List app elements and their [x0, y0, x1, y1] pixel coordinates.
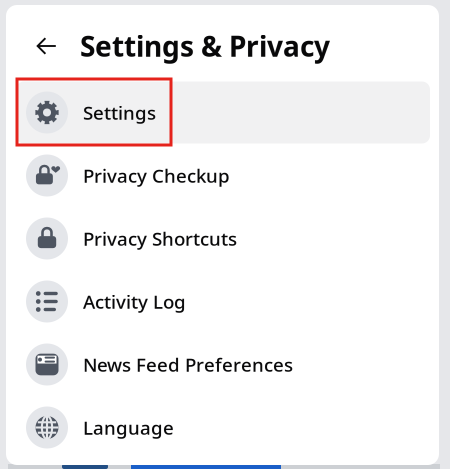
- staticText: Language: [83, 415, 174, 440]
- button[interactable]: Activity Log: [6, 270, 439, 333]
- button[interactable]: Privacy Shortcuts: [6, 207, 439, 270]
- button[interactable]: Back: [23, 23, 69, 69]
- button[interactable]: Language: [6, 396, 439, 459]
- staticText: News Feed Preferences: [83, 352, 293, 377]
- button[interactable]: Settings: [6, 81, 439, 144]
- staticText: Privacy Shortcuts: [83, 226, 237, 251]
- button[interactable]: Privacy Checkup: [6, 144, 439, 207]
- staticText: Settings & Privacy: [80, 27, 330, 65]
- staticText: Settings: [83, 100, 156, 125]
- button[interactable]: News Feed Preferences: [6, 333, 439, 396]
- staticText: Activity Log: [83, 289, 186, 314]
- staticText: Privacy Checkup: [83, 163, 230, 188]
